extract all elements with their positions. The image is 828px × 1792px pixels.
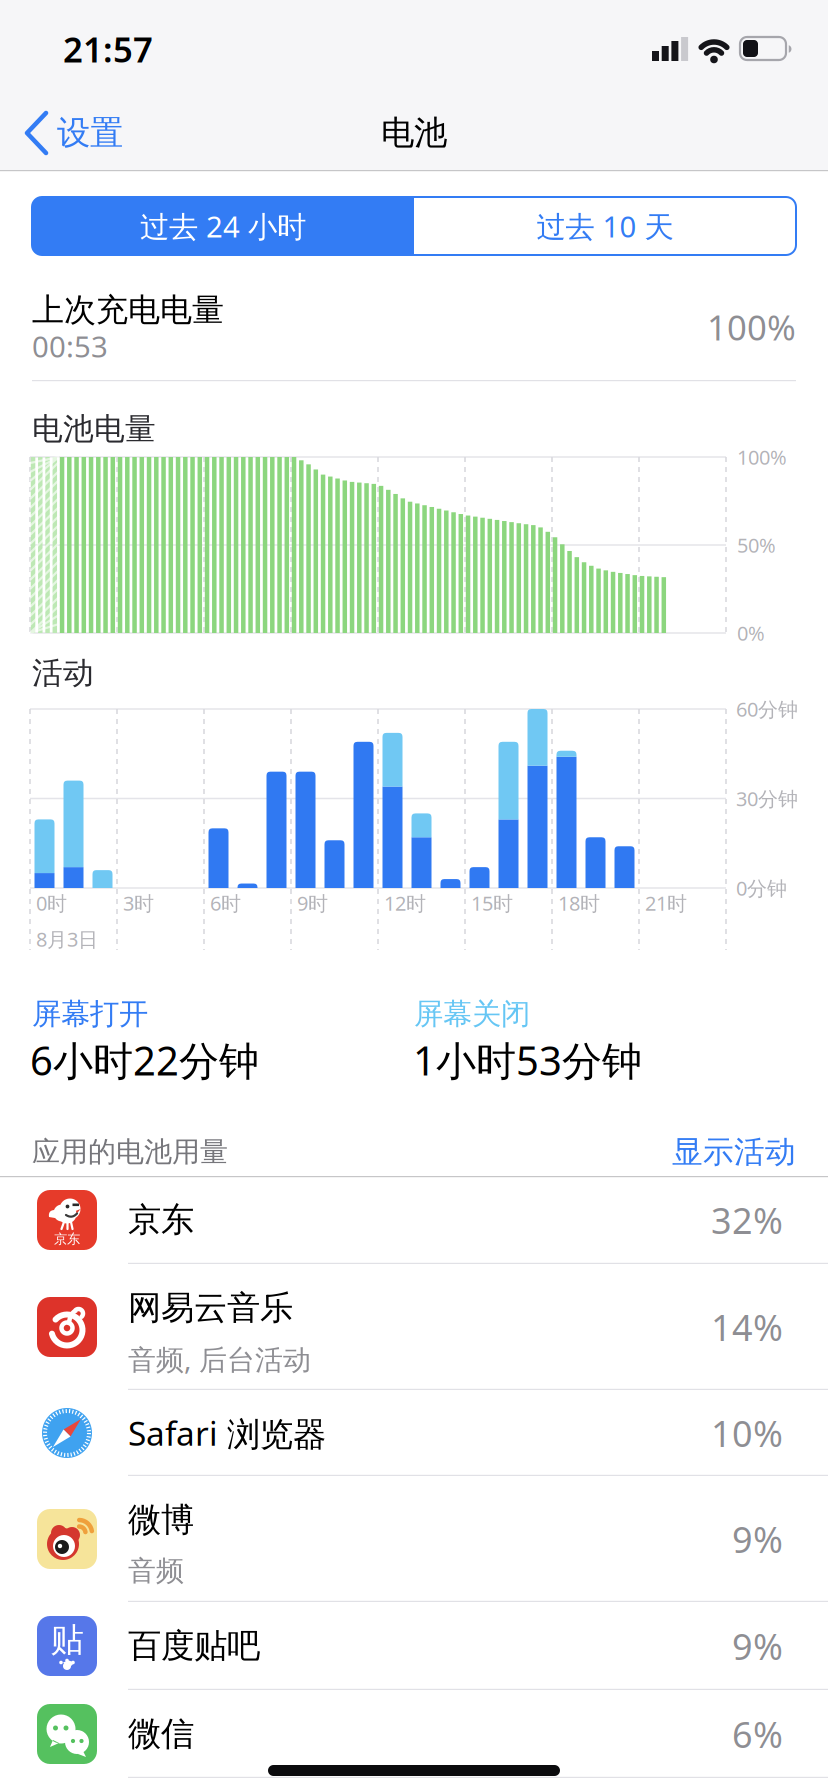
staticText: 过去 24 小时	[140, 206, 306, 245]
staticText: 9%	[732, 1515, 783, 1563]
staticText: 音频	[128, 1554, 184, 1588]
staticText: 上次充电电量	[32, 290, 224, 330]
staticText: 0分钟	[736, 875, 787, 901]
button[interactable]: 显示活动	[626, 1127, 796, 1177]
button[interactable]: 过去 10 天	[414, 197, 796, 255]
staticText: 活动	[32, 654, 94, 692]
staticText: 10%	[711, 1409, 783, 1457]
staticText: 0时	[36, 890, 67, 916]
button[interactable]: 微博	[0, 1476, 828, 1602]
staticText: 6%	[732, 1710, 783, 1758]
staticText: 电池电量	[32, 410, 156, 448]
staticText: 百度贴吧	[128, 1625, 260, 1666]
staticText: 微信	[128, 1713, 194, 1754]
button[interactable]: 过去 24 小时	[32, 197, 414, 255]
staticText: 屏幕关闭	[414, 996, 530, 1032]
staticText: 14%	[711, 1303, 783, 1351]
button[interactable]: 微信	[0, 1690, 828, 1778]
staticText: Safari 浏览器	[128, 1411, 326, 1455]
staticText: 0%	[737, 620, 765, 646]
staticText: 12时	[384, 890, 426, 916]
staticText: 贴	[50, 1619, 83, 1660]
staticText: 屏幕打开	[32, 996, 148, 1032]
staticText: 6小时22分钟	[30, 1033, 259, 1086]
staticText: 50%	[737, 532, 776, 558]
staticText: 1小时53分钟	[413, 1033, 642, 1086]
staticText: 过去 10 天	[536, 206, 673, 245]
staticText: 18时	[558, 890, 600, 916]
staticText: 100%	[737, 444, 787, 470]
staticText: 3时	[123, 890, 154, 916]
staticText: 15时	[471, 890, 513, 916]
staticText: 6时	[210, 890, 241, 916]
staticText: 21:57	[63, 26, 153, 72]
staticText: 网易云音乐	[128, 1287, 293, 1328]
button[interactable]: 京东	[0, 1176, 828, 1264]
staticText: 京东	[54, 1231, 80, 1247]
staticText: 设置	[57, 112, 123, 153]
staticText: 8月3日	[36, 926, 98, 952]
staticText: 00:53	[32, 326, 108, 365]
staticText: 9%	[732, 1622, 783, 1670]
staticText: 100%	[707, 304, 796, 350]
button[interactable]: 设置	[18, 103, 168, 163]
button[interactable]: 网易云音乐	[0, 1264, 828, 1390]
staticText: 21时	[645, 890, 687, 916]
staticText: 应用的电池用量	[32, 1135, 228, 1169]
staticText: 60分钟	[736, 696, 798, 722]
staticText: 音频, 后台活动	[128, 1340, 311, 1378]
staticText: 30分钟	[736, 785, 798, 812]
staticText: 9时	[297, 890, 328, 916]
staticText: 显示活动	[672, 1133, 796, 1171]
staticText: 微博	[128, 1499, 194, 1540]
staticText: 电池	[381, 112, 447, 153]
staticText: 京东	[128, 1199, 194, 1240]
button[interactable]: 贴	[0, 1602, 828, 1690]
staticText: 32%	[711, 1196, 783, 1244]
button[interactable]: Safari 浏览器	[0, 1390, 828, 1476]
